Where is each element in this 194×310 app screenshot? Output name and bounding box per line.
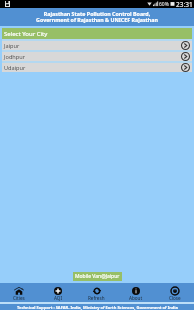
staticText: 60% bbox=[159, 1, 169, 8]
staticText: Jodhpur bbox=[4, 53, 26, 61]
staticText: Jaipur bbox=[4, 42, 20, 50]
button[interactable]: Jaipur bbox=[2, 41, 192, 50]
button[interactable]: About bbox=[116, 283, 155, 302]
staticText: Mobile Van@Jaipur bbox=[75, 273, 120, 280]
staticText: Udaipur bbox=[4, 64, 26, 72]
staticText: Refresh bbox=[88, 295, 105, 301]
button[interactable]: Close bbox=[155, 283, 194, 302]
button[interactable]: Refresh bbox=[77, 283, 116, 302]
staticText: Cities bbox=[13, 295, 25, 301]
staticText: 23:31 bbox=[176, 0, 193, 8]
staticText: About bbox=[129, 295, 143, 301]
staticText: AQI bbox=[54, 295, 62, 301]
button[interactable]: AQI bbox=[38, 283, 77, 302]
staticText: Rajasthan State Pollution Control Board,… bbox=[36, 10, 158, 24]
staticText: Technical Support : SAFAR- India, Minist… bbox=[17, 305, 178, 310]
button[interactable]: Jodhpur bbox=[2, 52, 192, 61]
button[interactable]: Udaipur bbox=[2, 63, 192, 72]
button[interactable]: Cities bbox=[0, 283, 38, 302]
staticText: Select Your City bbox=[4, 30, 48, 38]
staticText: Close bbox=[169, 295, 181, 301]
